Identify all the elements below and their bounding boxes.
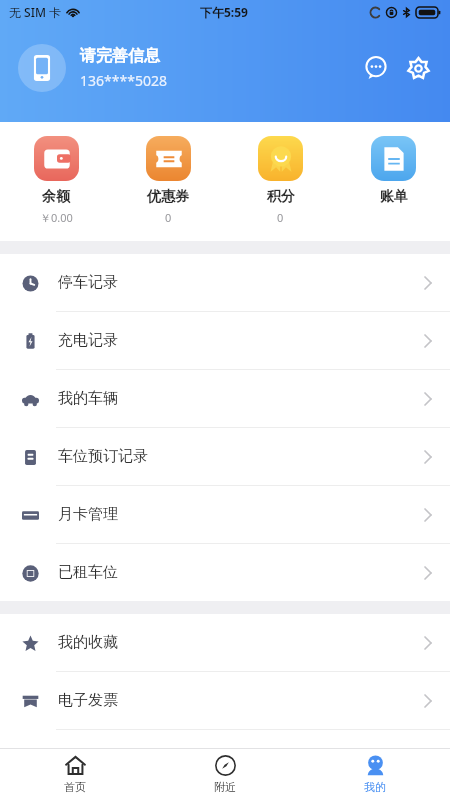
staticText: 已租车位	[58, 563, 118, 582]
staticText: 下午5:59	[200, 4, 248, 20]
staticText: 附近	[214, 780, 236, 794]
button[interactable]: 我的	[300, 749, 450, 800]
button[interactable]: Settings	[400, 50, 436, 86]
button[interactable]: 我的车辆	[0, 370, 450, 428]
button[interactable]: 账单	[337, 136, 450, 206]
staticText: 我的	[364, 780, 386, 794]
staticText: 积分	[267, 188, 295, 206]
button[interactable]: 电子发票	[0, 672, 450, 730]
button[interactable]: 月卡管理	[0, 486, 450, 544]
staticText: 余额	[42, 188, 70, 206]
staticText: 充电记录	[58, 331, 118, 350]
staticText: 账单	[380, 188, 408, 206]
staticText: 我的收藏	[58, 633, 118, 652]
button[interactable]: 优惠券	[112, 136, 224, 225]
staticText: 首页	[64, 780, 86, 794]
button[interactable]: 附近	[150, 749, 300, 800]
button[interactable]: 车位预订记录	[0, 428, 450, 486]
staticText: 电子发票	[58, 691, 118, 710]
button[interactable]: 申诉记录	[0, 730, 450, 787]
staticText: 0	[277, 210, 284, 225]
button[interactable]: 余额	[0, 136, 112, 225]
staticText: 停车记录	[58, 273, 118, 292]
button[interactable]: 充电记录	[0, 312, 450, 370]
button[interactable]: 我的收藏	[0, 614, 450, 672]
staticText: 优惠券	[147, 188, 189, 206]
button[interactable]: Messages	[358, 50, 394, 86]
button[interactable]: 积分	[224, 136, 337, 225]
staticText: ￥0.00	[40, 210, 73, 225]
button[interactable]: 停车记录	[0, 254, 450, 312]
button[interactable]: 首页	[0, 749, 150, 800]
staticText: 月卡管理	[58, 505, 118, 524]
staticText: 申诉记录	[58, 749, 118, 768]
staticText: 车位预订记录	[58, 447, 148, 466]
staticText: 请完善信息	[80, 46, 160, 66]
staticText: 0	[165, 210, 172, 225]
staticText: 136****5028	[80, 71, 167, 90]
staticText: 我的车辆	[58, 389, 118, 408]
staticText: 无 SIM 卡	[9, 4, 62, 20]
button[interactable]: 已租车位	[0, 544, 450, 601]
